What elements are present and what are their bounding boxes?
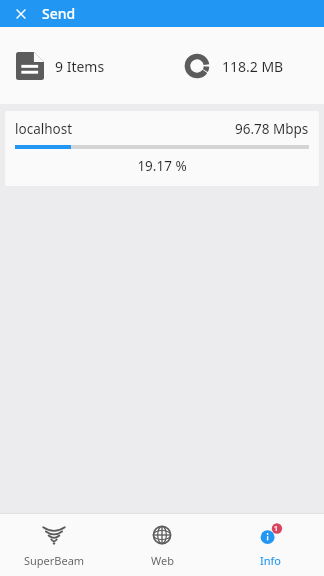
button[interactable]: Info: [216, 514, 324, 576]
staticText: Info: [260, 553, 281, 568]
staticText: localhost: [15, 120, 73, 138]
button[interactable]: Close: [9, 2, 33, 26]
staticText: 1: [274, 524, 279, 534]
staticText: SuperBeam: [24, 553, 85, 568]
other: SuperBeam: [42, 523, 66, 547]
staticText: Web: [151, 553, 174, 568]
button[interactable]: localhost: [5, 111, 319, 186]
button[interactable]: Web: [108, 514, 216, 576]
staticText: 9 Items: [55, 57, 105, 76]
staticText: 19.17 %: [15, 157, 309, 175]
staticText: 96.78 Mbps: [235, 120, 309, 138]
other: Info: [258, 523, 282, 547]
other: Web: [150, 523, 174, 547]
button[interactable]: SuperBeam: [0, 514, 108, 576]
staticText: Send: [42, 4, 76, 23]
staticText: 118.2 MB: [222, 57, 284, 76]
